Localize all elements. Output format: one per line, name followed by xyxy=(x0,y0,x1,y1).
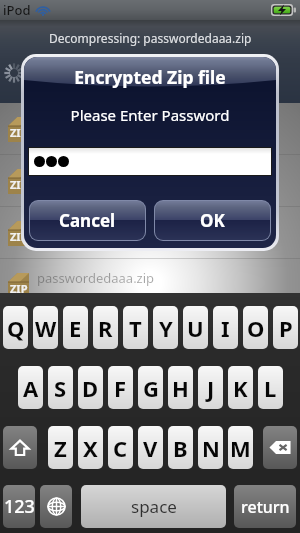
staticText: Z xyxy=(54,433,67,463)
staticText: 177 bytes xyxy=(188,238,229,250)
button[interactable]: OK xyxy=(155,201,270,240)
staticText: R xyxy=(98,313,113,343)
staticText: G xyxy=(143,373,159,403)
button[interactable]: O xyxy=(243,306,268,349)
button[interactable]: B xyxy=(168,426,193,469)
staticText: N xyxy=(202,433,220,463)
staticText: I xyxy=(221,313,230,343)
staticText: C xyxy=(113,433,128,463)
staticText: Decompressing: passwordedaaa.zip xyxy=(49,30,252,46)
button[interactable]: S xyxy=(48,366,73,409)
button[interactable]: X xyxy=(78,426,103,469)
button[interactable]: K xyxy=(228,366,253,409)
button[interactable]: P xyxy=(273,306,298,349)
staticText: 177 bytes xyxy=(188,290,229,302)
staticText: passwordedaaa.zip xyxy=(37,113,155,131)
button[interactable]: D xyxy=(78,366,103,409)
staticText: iPod xyxy=(3,1,31,19)
button[interactable]: C xyxy=(108,426,133,469)
staticText: E xyxy=(69,313,82,343)
button[interactable]: L xyxy=(258,366,283,409)
button[interactable]: space xyxy=(81,485,226,528)
staticText: Y xyxy=(159,313,173,343)
button[interactable]: T xyxy=(123,306,148,349)
button[interactable]: Q xyxy=(3,306,28,349)
staticText: Please Enter Password xyxy=(24,105,276,125)
button[interactable]: W xyxy=(33,306,58,349)
staticText: Encrypted Zip file xyxy=(24,65,276,89)
button[interactable] xyxy=(29,148,271,175)
staticText: L xyxy=(264,373,277,403)
staticText: U xyxy=(187,313,204,343)
staticText: passwordedaaa.zip xyxy=(37,269,155,287)
staticText: W xyxy=(35,313,57,343)
staticText: ZIP xyxy=(10,125,28,140)
button[interactable]: J xyxy=(198,366,223,409)
staticText: return xyxy=(241,496,290,518)
button[interactable]: Z xyxy=(48,426,73,469)
button[interactable]: E xyxy=(63,306,88,349)
button[interactable]: return xyxy=(234,485,296,528)
button[interactable]: G xyxy=(138,366,163,409)
staticText: D xyxy=(82,373,99,403)
button[interactable]: H xyxy=(168,366,193,409)
staticText: OK xyxy=(200,209,225,232)
button[interactable]: M xyxy=(228,426,253,469)
button[interactable]: Next keyboard xyxy=(40,485,72,528)
staticText: 123 xyxy=(4,494,35,519)
staticText: ZIP xyxy=(10,281,28,296)
staticText: 2008/12/20 09:10:06 xyxy=(37,238,130,250)
button[interactable]: Y xyxy=(153,306,178,349)
button[interactable]: U xyxy=(183,306,208,349)
button[interactable]: R xyxy=(93,306,118,349)
staticText: passwordedaaa.zip xyxy=(37,165,155,183)
staticText: Q xyxy=(7,313,25,343)
staticText: Cancel xyxy=(59,209,116,232)
staticText: M xyxy=(230,433,251,463)
staticText: space xyxy=(131,495,177,518)
staticText: P xyxy=(279,313,293,343)
button[interactable]: N xyxy=(198,426,223,469)
staticText: 2008/12/20 09:10:06 xyxy=(37,290,130,302)
staticText: B xyxy=(173,433,188,463)
button[interactable]: Cancel xyxy=(30,201,145,240)
staticText: S xyxy=(54,373,67,403)
staticText: F xyxy=(114,373,127,403)
staticText: X xyxy=(83,433,98,463)
button[interactable]: V xyxy=(138,426,163,469)
staticText: ZIP xyxy=(10,229,28,244)
staticText: A xyxy=(23,373,39,403)
button[interactable]: Shift xyxy=(3,426,37,469)
button[interactable]: A xyxy=(18,366,43,409)
button[interactable]: Backspace xyxy=(263,426,297,469)
button[interactable]: 123 xyxy=(3,485,35,528)
staticText: K xyxy=(233,373,248,403)
staticText: H xyxy=(172,373,189,403)
button[interactable]: F xyxy=(108,366,133,409)
staticText: O xyxy=(247,313,265,343)
staticText: T xyxy=(129,313,142,343)
staticText: J xyxy=(207,373,215,403)
staticText: V xyxy=(143,433,158,463)
staticText: ZIP xyxy=(10,177,28,192)
staticText: passwordedaaa.zip xyxy=(37,217,155,235)
button[interactable]: I xyxy=(213,306,238,349)
